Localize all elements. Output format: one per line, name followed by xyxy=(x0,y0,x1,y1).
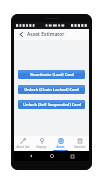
staticText: Asset Estimator xyxy=(27,31,65,38)
button[interactable]: Back xyxy=(27,152,35,160)
button[interactable]: Back xyxy=(17,30,26,39)
staticText: Unlock (Self Suspended) Card xyxy=(23,102,81,107)
staticText: Services xyxy=(74,145,86,149)
staticText: Asset Estimator xyxy=(51,145,70,149)
button[interactable]: Reactivate (Lost) Card xyxy=(18,70,85,79)
button[interactable]: Unlock (Self Suspended) Card xyxy=(18,100,85,109)
staticText: Inquiry xyxy=(36,145,47,149)
button[interactable]: Home xyxy=(48,152,56,160)
button[interactable]: Inquiry xyxy=(32,136,51,151)
button[interactable]: Recents xyxy=(68,152,76,160)
button[interactable]: Asset List xyxy=(14,136,32,151)
staticText: Asset List xyxy=(16,145,30,149)
button[interactable]: Asset Estimator xyxy=(51,136,70,151)
button[interactable]: Services xyxy=(70,136,89,151)
staticText: Unlock (Chain Locked) Card xyxy=(24,87,79,92)
button[interactable]: Unlock (Chain Locked) Card xyxy=(18,85,85,94)
staticText: Reactivate (Lost) Card xyxy=(30,72,74,77)
